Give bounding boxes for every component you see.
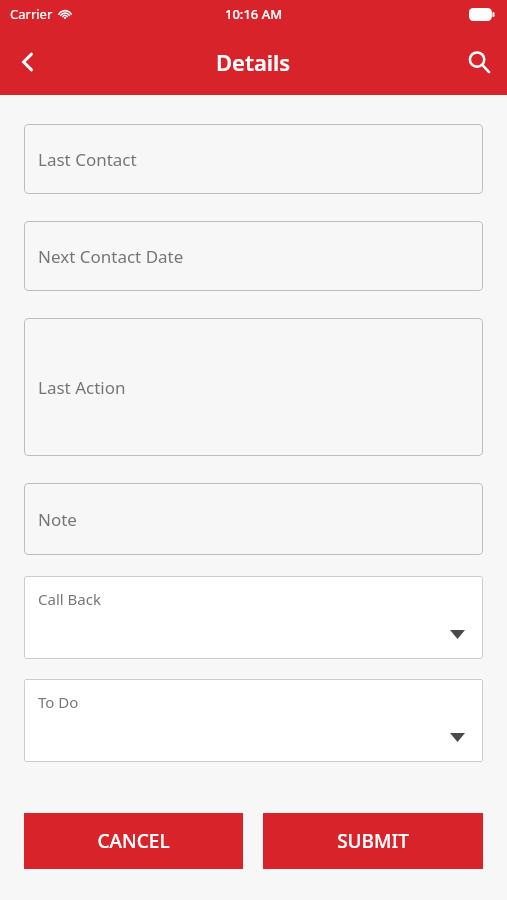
staticText: To Do (38, 692, 79, 712)
button[interactable]: SUBMIT (263, 813, 483, 869)
button[interactable]: Next Contact Date (24, 221, 483, 291)
button[interactable]: Call Back (24, 576, 483, 659)
button[interactable]: CANCEL (24, 813, 243, 869)
button[interactable]: Back (0, 34, 56, 90)
staticText: Next Contact Date (38, 245, 184, 268)
staticText: CANCEL (97, 828, 170, 854)
staticText: Last Contact (38, 148, 137, 171)
button[interactable]: Note (24, 483, 483, 555)
staticText: SUBMIT (337, 828, 409, 854)
staticText: Note (38, 508, 77, 531)
staticText: Carrier (10, 5, 53, 23)
button[interactable]: To Do (24, 679, 483, 762)
staticText: Last Action (38, 376, 126, 399)
button[interactable]: Search (451, 34, 507, 90)
staticText: Details (216, 47, 291, 77)
staticText: 10:16 AM (225, 5, 283, 23)
button[interactable]: Last Action (24, 318, 483, 456)
button[interactable]: Last Contact (24, 124, 483, 194)
staticText: Call Back (38, 589, 101, 609)
